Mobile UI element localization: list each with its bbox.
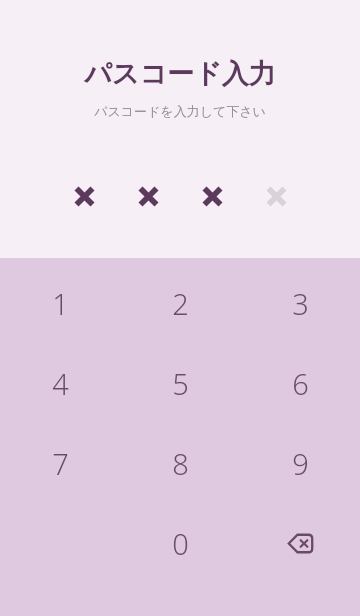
staticText: パスコード入力 xyxy=(84,57,276,91)
button[interactable]: 4 xyxy=(0,343,120,423)
staticText: 8 xyxy=(172,444,189,483)
staticText: 6 xyxy=(292,364,309,403)
staticText: 0 xyxy=(172,524,189,563)
button[interactable]: 8 xyxy=(120,423,240,503)
button[interactable]: 2 xyxy=(120,263,240,343)
button[interactable]: 0 xyxy=(120,503,240,583)
button[interactable]: Backspace xyxy=(240,503,360,583)
staticText: 1 xyxy=(52,284,69,323)
button[interactable]: 3 xyxy=(240,263,360,343)
staticText: 3 xyxy=(292,284,309,323)
button[interactable]: 6 xyxy=(240,343,360,423)
staticText: 4 xyxy=(52,364,69,403)
button[interactable]: 9 xyxy=(240,423,360,503)
staticText: 9 xyxy=(292,444,309,483)
staticText: 2 xyxy=(172,284,189,323)
staticText: 7 xyxy=(52,444,69,483)
staticText: 5 xyxy=(172,364,189,403)
staticText: パスコードを入力して下さい xyxy=(94,103,266,119)
button[interactable]: 1 xyxy=(0,263,120,343)
button[interactable]: 7 xyxy=(0,423,120,503)
button[interactable]: 5 xyxy=(120,343,240,423)
